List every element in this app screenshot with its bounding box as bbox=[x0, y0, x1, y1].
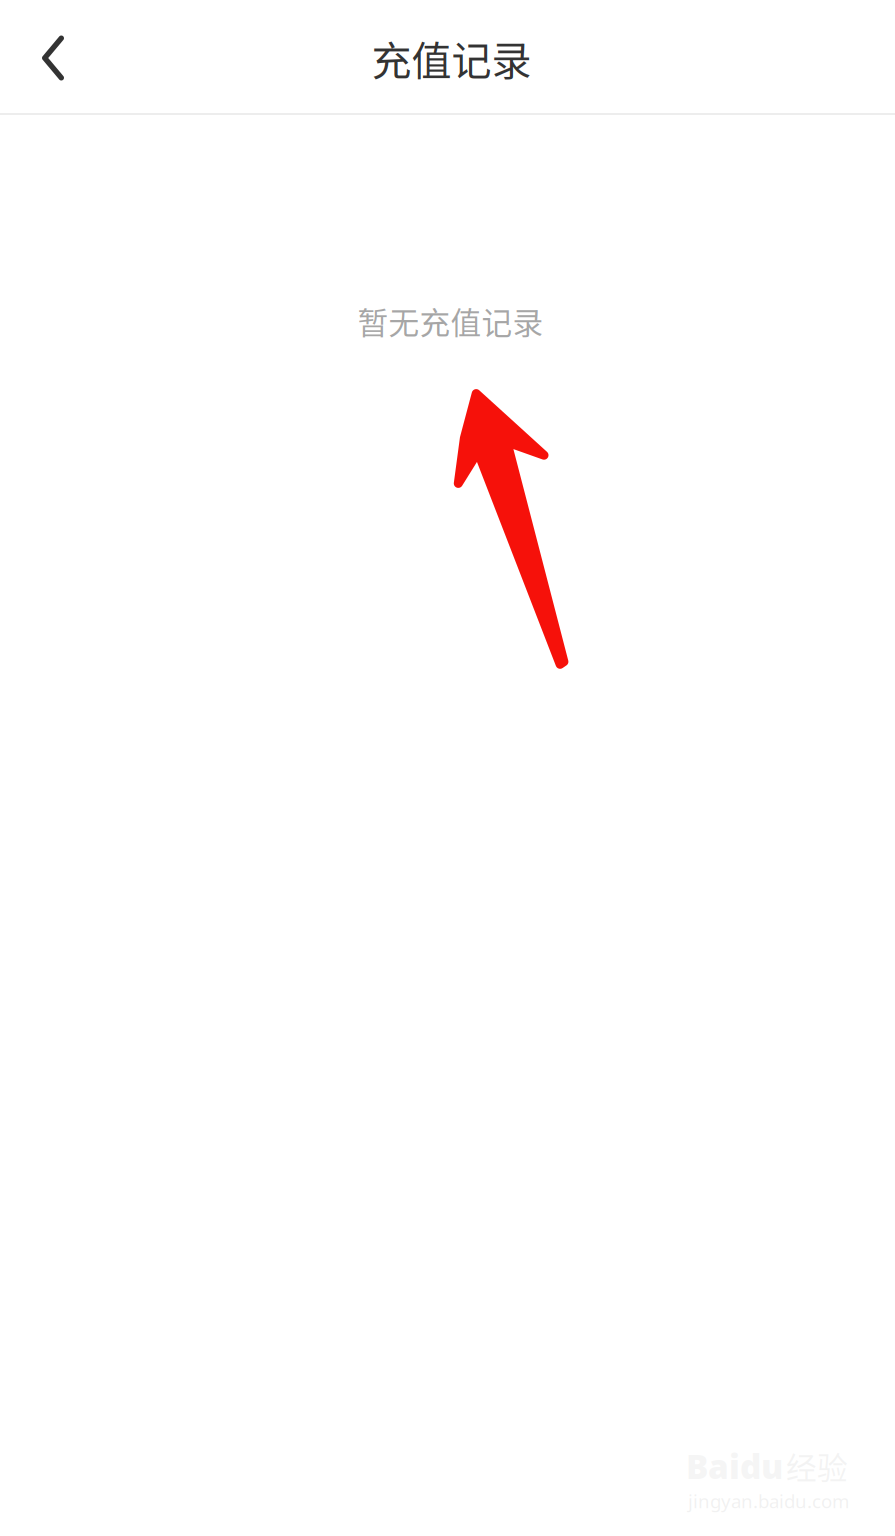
staticText: jingyan.baidu.com bbox=[688, 1489, 849, 1513]
button[interactable]: Back bbox=[10, 1, 96, 114]
staticText: 充值记录 bbox=[371, 29, 531, 87]
staticText: 暂无充值记录 bbox=[357, 299, 543, 343]
staticText: Baidu bbox=[686, 1444, 783, 1488]
staticText: 经验 bbox=[786, 1444, 848, 1488]
